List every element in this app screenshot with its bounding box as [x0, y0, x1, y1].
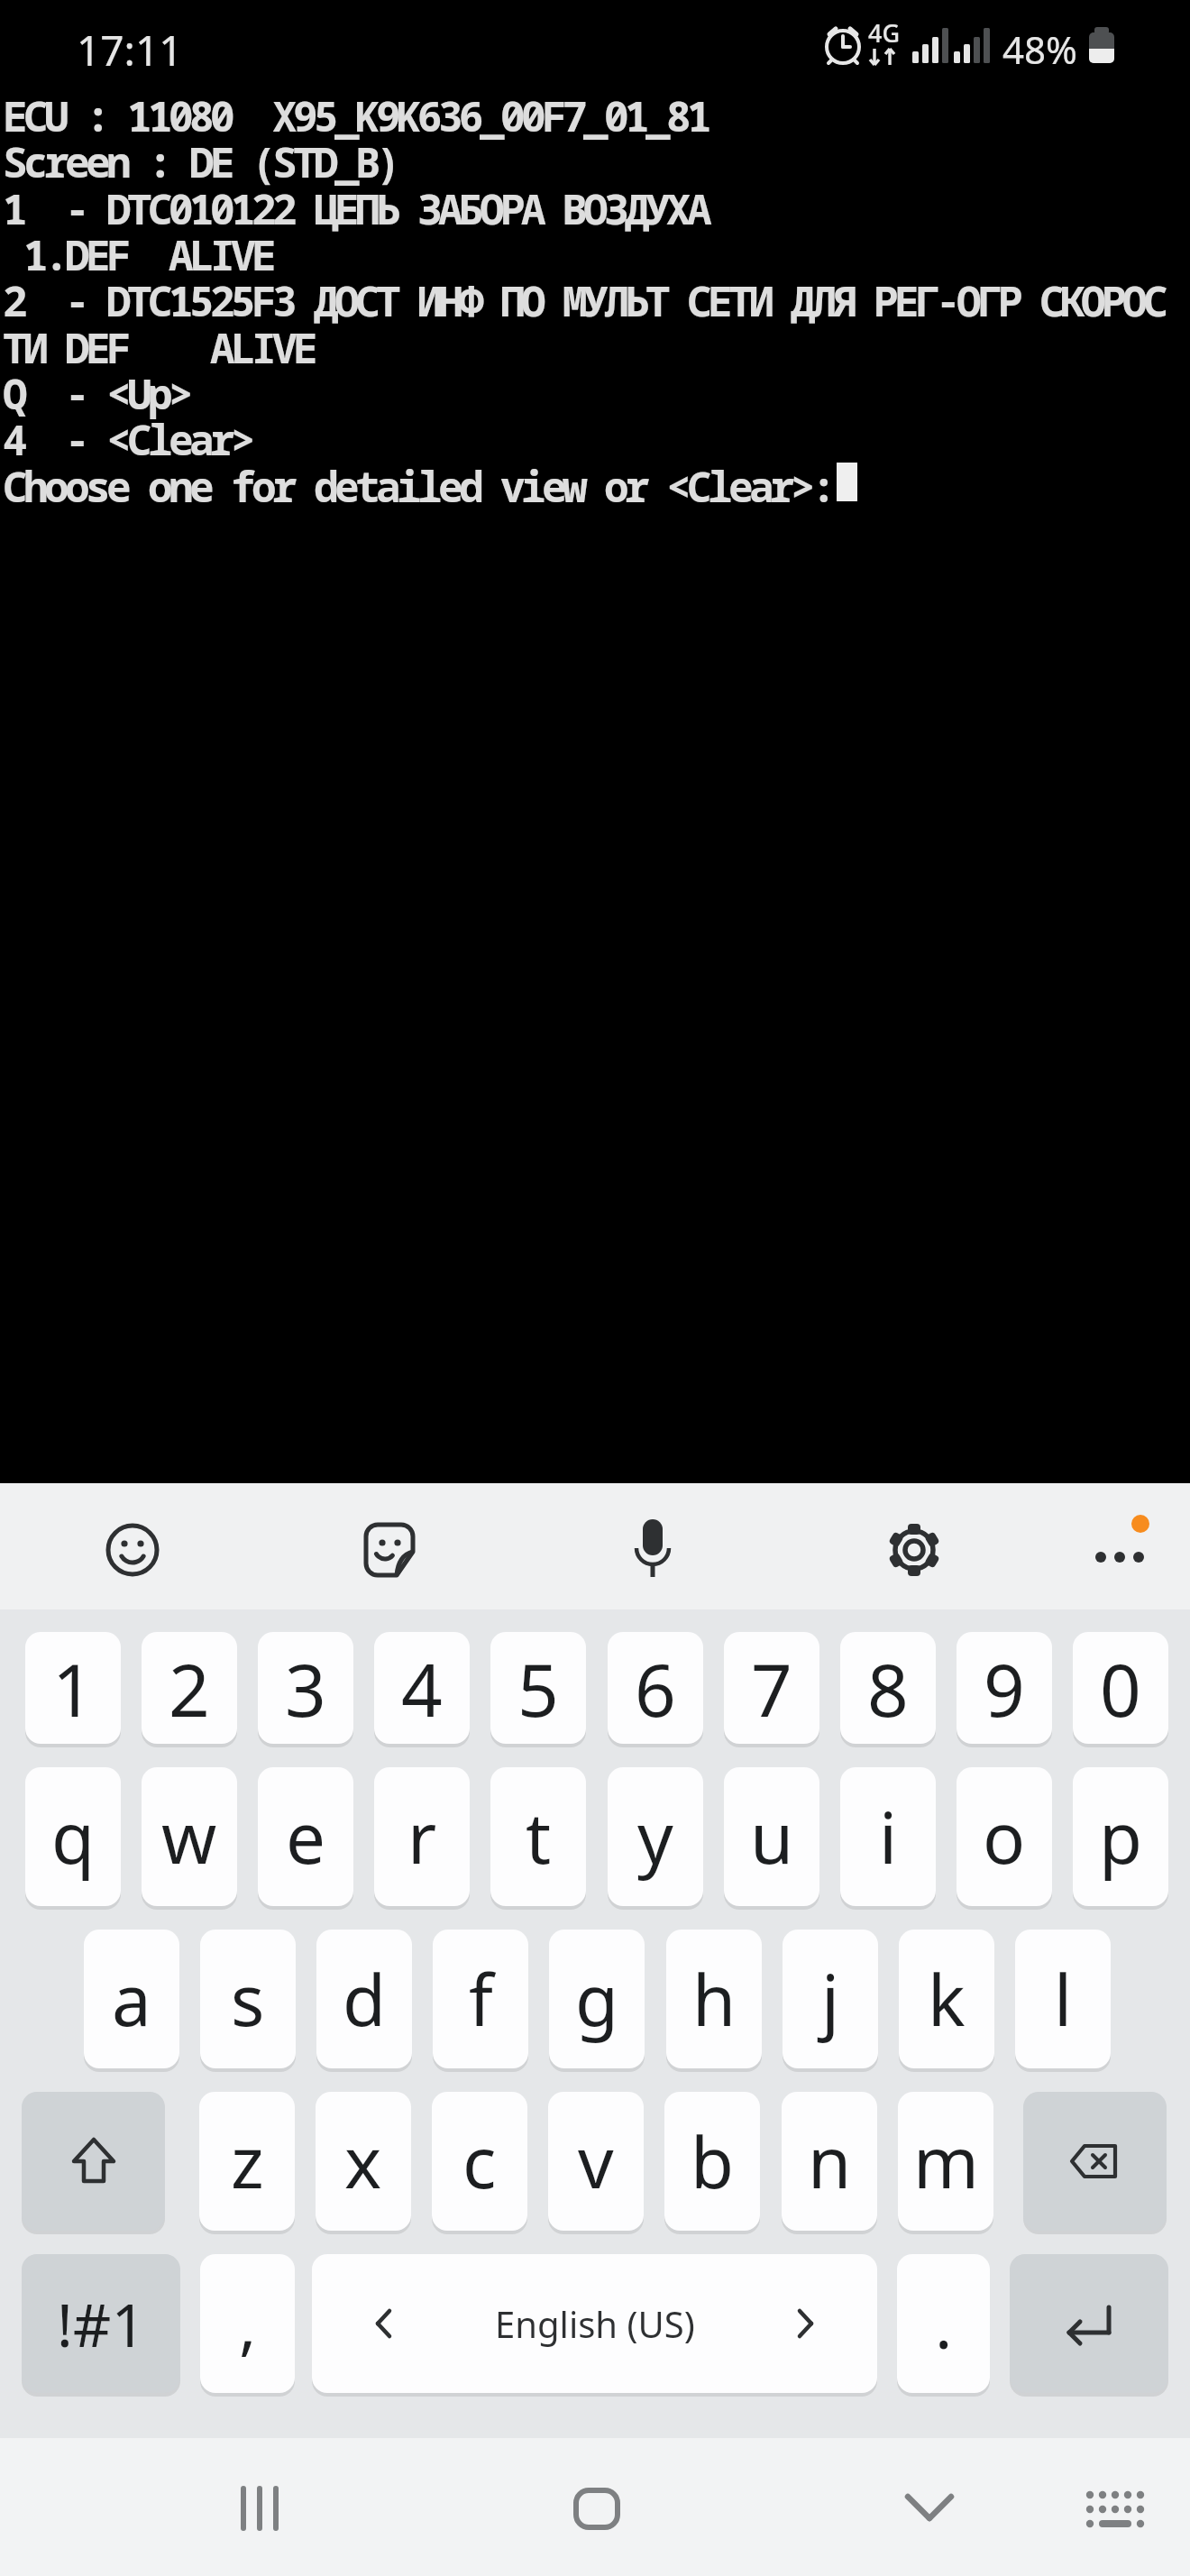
button[interactable]: 2: [142, 1632, 237, 1744]
button[interactable]: [1070, 2465, 1160, 2555]
staticText: l: [1054, 1951, 1073, 2047]
staticText: 3: [285, 1639, 326, 1737]
staticText: a: [112, 1951, 151, 2047]
button[interactable]: l: [1015, 1930, 1111, 2068]
button[interactable]: 1: [25, 1632, 121, 1744]
staticText: 48%: [1002, 23, 1077, 75]
button[interactable]: k: [899, 1930, 994, 2068]
staticText: ТИ DEF ALIVE: [3, 319, 315, 376]
button[interactable]: t: [490, 1767, 586, 1906]
staticText: 1 - DTC010122 ЦЕПЬ ЗАБОРА ВОЗДУХА: [3, 180, 709, 237]
button[interactable]: 6: [608, 1632, 703, 1744]
staticText: 8: [867, 1639, 909, 1737]
staticText: !#1: [57, 2283, 146, 2364]
button[interactable]: 8: [840, 1632, 936, 1744]
staticText: 0: [1100, 1639, 1141, 1737]
staticText: Screen : DE (STD_B): [3, 133, 398, 190]
staticText: f: [469, 1951, 493, 2047]
button[interactable]: b: [664, 2092, 760, 2231]
staticText: n: [808, 2113, 852, 2209]
button[interactable]: i: [840, 1767, 936, 1906]
staticText: 1: [52, 1639, 94, 1737]
button[interactable]: 9: [957, 1632, 1052, 1744]
staticText: o: [983, 1789, 1026, 1884]
staticText: 7: [751, 1639, 792, 1737]
button[interactable]: m: [898, 2092, 993, 2231]
staticText: z: [231, 2113, 264, 2209]
button[interactable]: s: [200, 1930, 296, 2068]
staticText: 1.DEF ALIVE: [3, 226, 273, 283]
staticText: 9: [984, 1639, 1025, 1737]
button[interactable]: !#1: [22, 2254, 180, 2393]
button[interactable]: p: [1073, 1767, 1168, 1906]
staticText: p: [1099, 1789, 1142, 1884]
button[interactable]: f: [433, 1930, 528, 2068]
button[interactable]: w: [142, 1767, 237, 1906]
staticText: v: [578, 2113, 614, 2209]
button[interactable]: y: [608, 1767, 703, 1906]
staticText: h: [692, 1951, 737, 2047]
staticText: 4G: [868, 16, 901, 50]
staticText: e: [286, 1789, 325, 1884]
staticText: t: [526, 1789, 552, 1884]
button[interactable]: v: [548, 2092, 644, 2231]
button[interactable]: 0: [1073, 1632, 1168, 1744]
staticText: .: [935, 2279, 953, 2368]
staticText: 2: [169, 1639, 210, 1737]
button[interactable]: [87, 1505, 178, 1595]
button[interactable]: [869, 1505, 959, 1595]
button[interactable]: [344, 1505, 435, 1595]
staticText: d: [343, 1951, 386, 2047]
staticText: j: [821, 1951, 840, 2047]
staticText: ,: [239, 2279, 257, 2368]
button[interactable]: [884, 2463, 975, 2553]
button[interactable]: 4: [374, 1632, 470, 1744]
button[interactable]: [1023, 2092, 1167, 2231]
staticText: w: [161, 1789, 217, 1884]
button[interactable]: 3: [258, 1632, 353, 1744]
button[interactable]: a: [84, 1930, 179, 2068]
staticText: y: [637, 1789, 673, 1884]
button[interactable]: [216, 2463, 307, 2553]
staticText: x: [344, 2113, 382, 2209]
staticText: Q - <Up>: [3, 365, 190, 422]
button[interactable]: x: [316, 2092, 411, 2231]
staticText: 4 - <Clear>: [3, 411, 252, 468]
button[interactable]: ,: [200, 2254, 295, 2393]
button[interactable]: [1075, 1505, 1165, 1595]
button[interactable]: [1010, 2254, 1168, 2393]
staticText: r: [407, 1789, 437, 1884]
staticText: 6: [635, 1639, 676, 1737]
staticText: 5: [517, 1639, 559, 1737]
button[interactable]: e: [258, 1767, 353, 1906]
button[interactable]: u: [724, 1767, 819, 1906]
button[interactable]: d: [316, 1930, 412, 2068]
button[interactable]: r: [374, 1767, 470, 1906]
button[interactable]: c: [432, 2092, 527, 2231]
button[interactable]: j: [783, 1930, 878, 2068]
button[interactable]: 7: [724, 1632, 819, 1744]
button[interactable]: [608, 1505, 698, 1595]
staticText: i: [879, 1789, 898, 1884]
staticText: k: [928, 1951, 966, 2047]
button[interactable]: .: [897, 2254, 990, 2393]
button[interactable]: 5: [490, 1632, 586, 1744]
staticText: q: [51, 1789, 95, 1884]
staticText: 17:11: [77, 22, 183, 78]
staticText: c: [462, 2113, 497, 2209]
button[interactable]: g: [549, 1930, 645, 2068]
staticText: Choose one for detailed view or <Clear>:: [3, 458, 832, 515]
button[interactable]: z: [199, 2092, 295, 2231]
button[interactable]: h: [666, 1930, 762, 2068]
button[interactable]: q: [25, 1767, 121, 1906]
button[interactable]: o: [957, 1767, 1052, 1906]
staticText: s: [231, 1951, 265, 2047]
staticText: u: [750, 1789, 794, 1884]
button[interactable]: [22, 2092, 165, 2231]
staticText: b: [691, 2113, 734, 2209]
button[interactable]: n: [782, 2092, 877, 2231]
button[interactable]: [552, 2463, 642, 2553]
staticText: m: [913, 2113, 979, 2209]
button[interactable]: English (US): [312, 2254, 877, 2393]
staticText: ECU : 11080 X95_K9K636_00F7_01_81: [3, 87, 708, 144]
